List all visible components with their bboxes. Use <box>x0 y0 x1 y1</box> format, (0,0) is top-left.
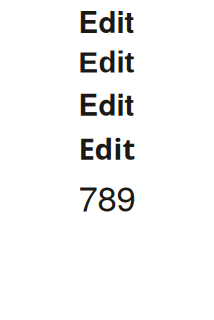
staticText: Edit <box>78 83 134 125</box>
staticText: Edit <box>78 0 134 42</box>
staticText: 789 <box>78 172 135 221</box>
staticText: Edit <box>78 129 135 168</box>
staticText: Edit <box>78 46 134 79</box>
